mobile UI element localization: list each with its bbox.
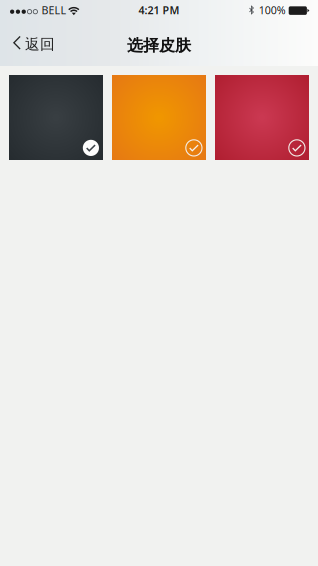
button[interactable]: Crimson skin	[215, 75, 309, 160]
staticText: 选择皮肤	[127, 36, 191, 55]
staticText: BELL	[41, 3, 66, 17]
staticText: 4:21 PM	[138, 3, 179, 17]
button[interactable]: Orange skin	[112, 75, 206, 160]
button[interactable]: Dark skin, selected	[9, 75, 103, 160]
button[interactable]: 返回	[0, 20, 67, 66]
staticText: 返回	[25, 35, 55, 53]
staticText: 100%	[259, 3, 286, 17]
